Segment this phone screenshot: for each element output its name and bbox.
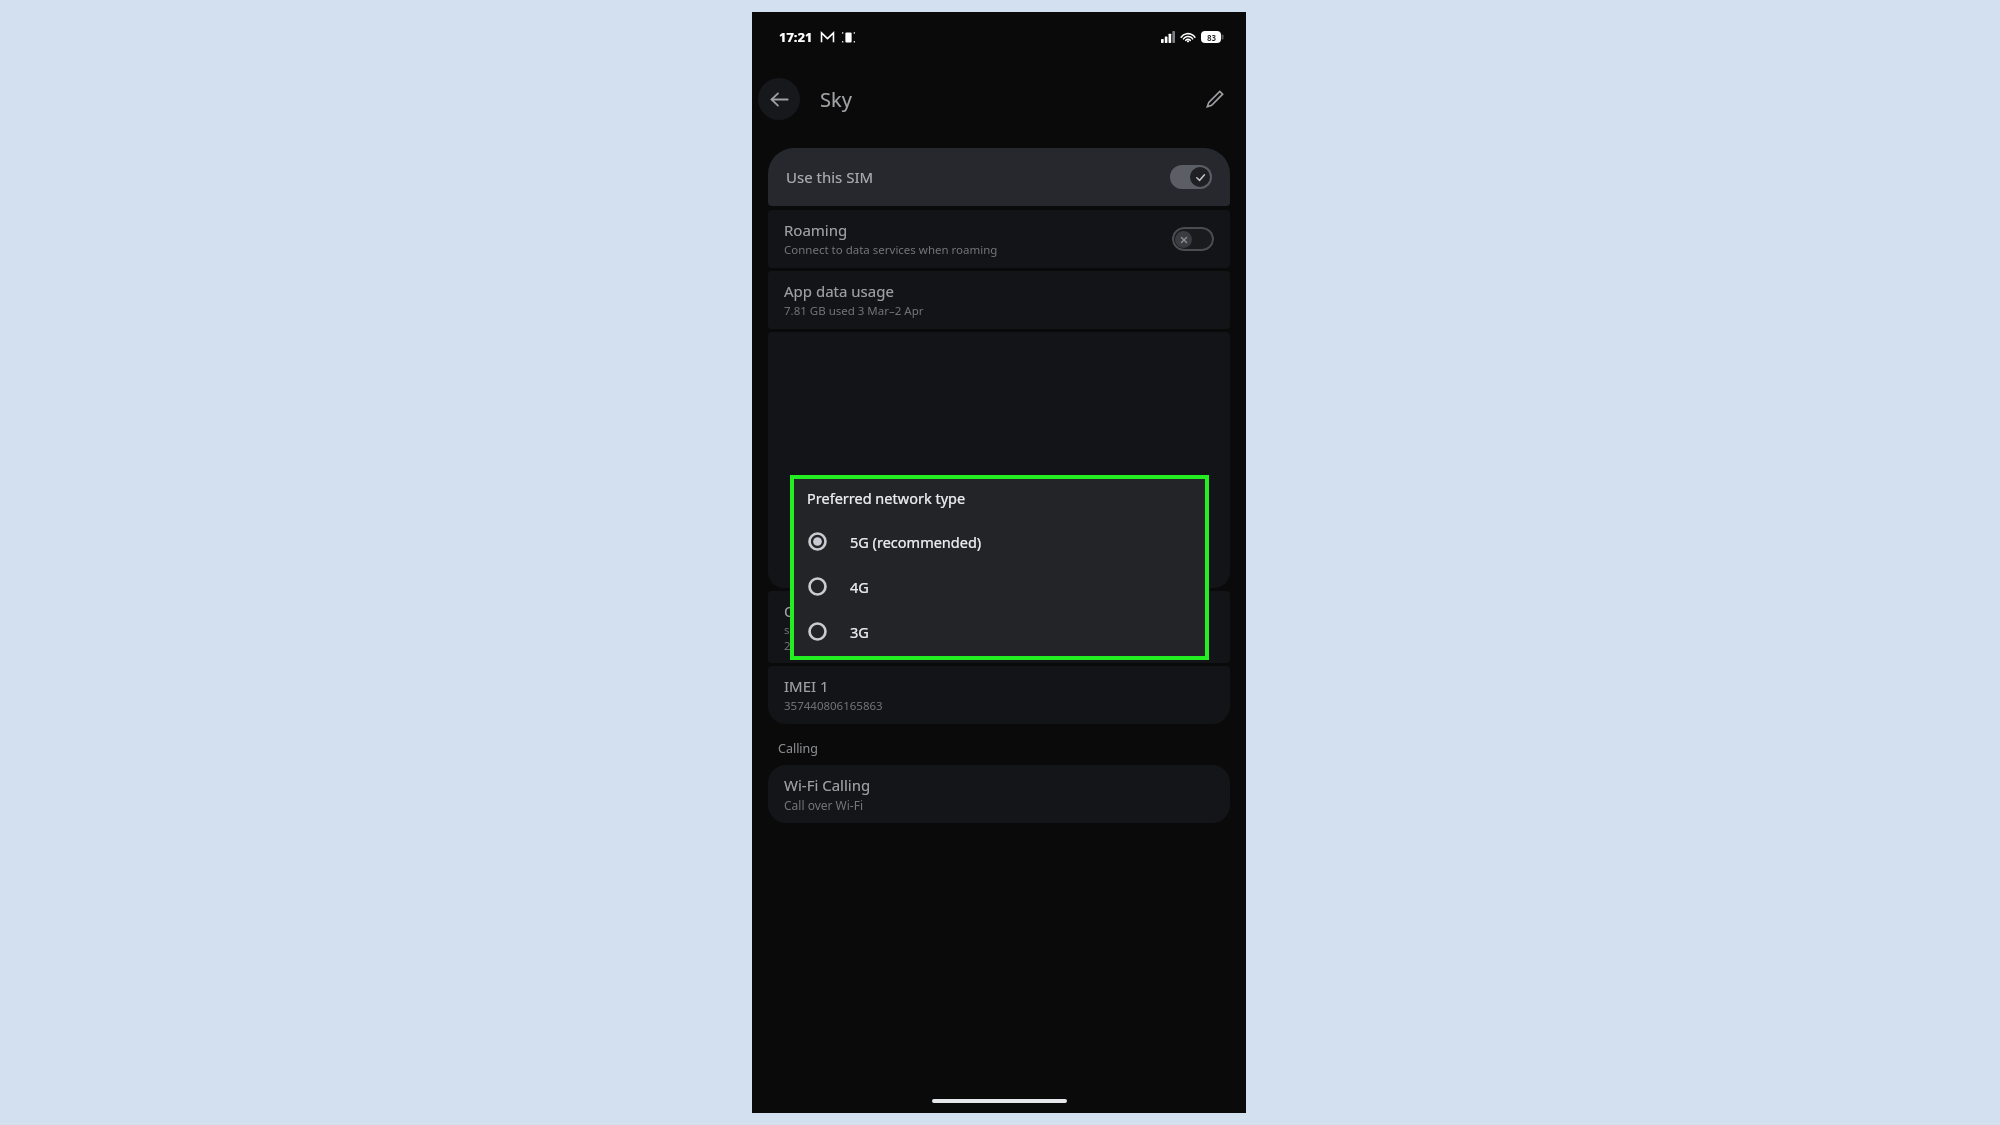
staticText: App data usage (784, 281, 894, 301)
staticText: 17:21 (779, 28, 813, 46)
staticText: 3G (850, 622, 869, 642)
staticText: Wi-Fi Calling (784, 775, 871, 795)
staticText: Sky (820, 86, 852, 113)
button[interactable]: 4G (794, 564, 1205, 609)
staticText: Calling (778, 740, 819, 757)
staticText: 7.81 GB used 3 Mar–2 Apr (784, 303, 924, 319)
staticText: 5G (recommended) (850, 532, 982, 552)
button[interactable]: Edit (1196, 81, 1232, 117)
staticText: Operator settings version (784, 601, 964, 621)
staticText: 357440806165863 (784, 698, 883, 714)
staticText: IMEI 1 (784, 676, 829, 696)
staticText: Use this SIM (786, 167, 1170, 187)
button[interactable]: Operator settings version (768, 591, 1230, 663)
staticText: Connect to data services when roaming (784, 242, 998, 258)
button[interactable]: Roaming (768, 210, 1230, 268)
button[interactable]: Use this SIM (768, 148, 1230, 206)
button[interactable]: IMEI 1 (768, 666, 1230, 724)
staticText: sky_gb-75000000003.10 (784, 622, 914, 638)
staticText: Roaming (784, 220, 848, 240)
staticText: 4G (850, 577, 869, 597)
staticText: Preferred network type (807, 488, 966, 508)
staticText: Call over Wi-Fi (784, 797, 864, 813)
button[interactable]: 3G (794, 609, 1205, 654)
button[interactable]: 5G (recommended) (794, 519, 1205, 564)
button[interactable]: Wi-Fi Calling (768, 765, 1230, 823)
button[interactable]: App data usage (768, 271, 1230, 329)
staticText: 83 (1207, 32, 1217, 43)
staticText: 2025-11-26 (784, 638, 845, 654)
button[interactable]: Back (758, 78, 800, 120)
